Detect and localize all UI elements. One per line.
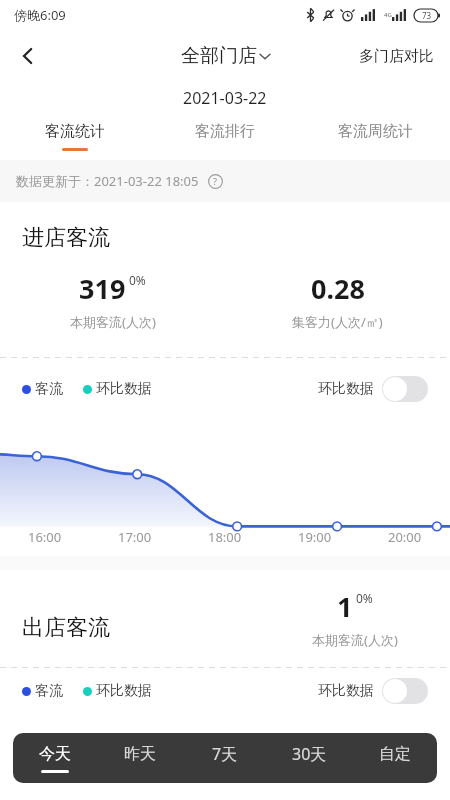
staticText: 进店客流 (22, 224, 110, 252)
staticText: 多门店对比 (359, 47, 434, 66)
button[interactable]: 30天 (267, 733, 352, 783)
button[interactable]: 客流统计 (0, 114, 150, 160)
staticText: 昨天 (124, 744, 156, 764)
staticText: 17:00 (118, 528, 152, 546)
button[interactable]: Toggle comparison data (382, 376, 428, 402)
button[interactable]: 多门店对比 (359, 47, 434, 66)
staticText: 319 (79, 270, 126, 307)
staticText: 30天 (292, 743, 327, 765)
staticText: 环比数据 (318, 682, 374, 700)
staticText: 客流 (35, 682, 63, 700)
staticText: 出店客流 (22, 614, 110, 642)
staticText: 集客力(人次/㎡) (292, 313, 383, 331)
button[interactable]: 今天 (13, 733, 97, 783)
button[interactable]: 7天 (182, 733, 267, 783)
staticText: 73 (422, 10, 432, 21)
staticText: ? (213, 175, 217, 187)
staticText: 本期客流(人次) (70, 313, 156, 331)
staticText: 全部门店 (181, 44, 257, 68)
staticText: 傍晚6:09 (14, 6, 66, 24)
staticText: 2021-03-22 (183, 87, 267, 109)
button[interactable]: 客流周统计 (300, 114, 450, 160)
staticText: 1 (337, 588, 353, 625)
staticText: 0.28 (311, 270, 365, 307)
button[interactable]: 自定 (352, 733, 437, 783)
staticText: 本期客流(人次) (312, 631, 398, 649)
staticText: 今天 (39, 744, 71, 764)
staticText: 16:00 (28, 528, 62, 546)
staticText: 环比数据 (318, 380, 374, 398)
staticText: 0% (129, 272, 146, 288)
button[interactable]: 客流排行 (150, 114, 300, 160)
staticText: 18:00 (208, 528, 242, 546)
staticText: 0% (356, 590, 373, 606)
button[interactable]: 全部门店 (181, 44, 270, 68)
staticText: 环比数据 (96, 380, 152, 398)
staticText: 客流排行 (195, 122, 255, 141)
staticText: 4G (384, 11, 392, 19)
staticText: 7天 (212, 743, 238, 765)
staticText: 客流周统计 (338, 122, 413, 141)
staticText: 客流统计 (45, 122, 105, 141)
button[interactable]: 昨天 (97, 733, 182, 783)
button[interactable]: Toggle comparison data (382, 678, 428, 704)
staticText: 环比数据 (96, 682, 152, 700)
staticText: 自定 (379, 744, 411, 764)
button[interactable]: Back (6, 34, 50, 78)
staticText: 客流 (35, 380, 63, 398)
button[interactable]: Help (206, 172, 224, 190)
staticText: 19:00 (298, 528, 332, 546)
staticText: 数据更新于：2021-03-22 18:05 (16, 172, 199, 190)
staticText: 20:00 (388, 528, 422, 546)
